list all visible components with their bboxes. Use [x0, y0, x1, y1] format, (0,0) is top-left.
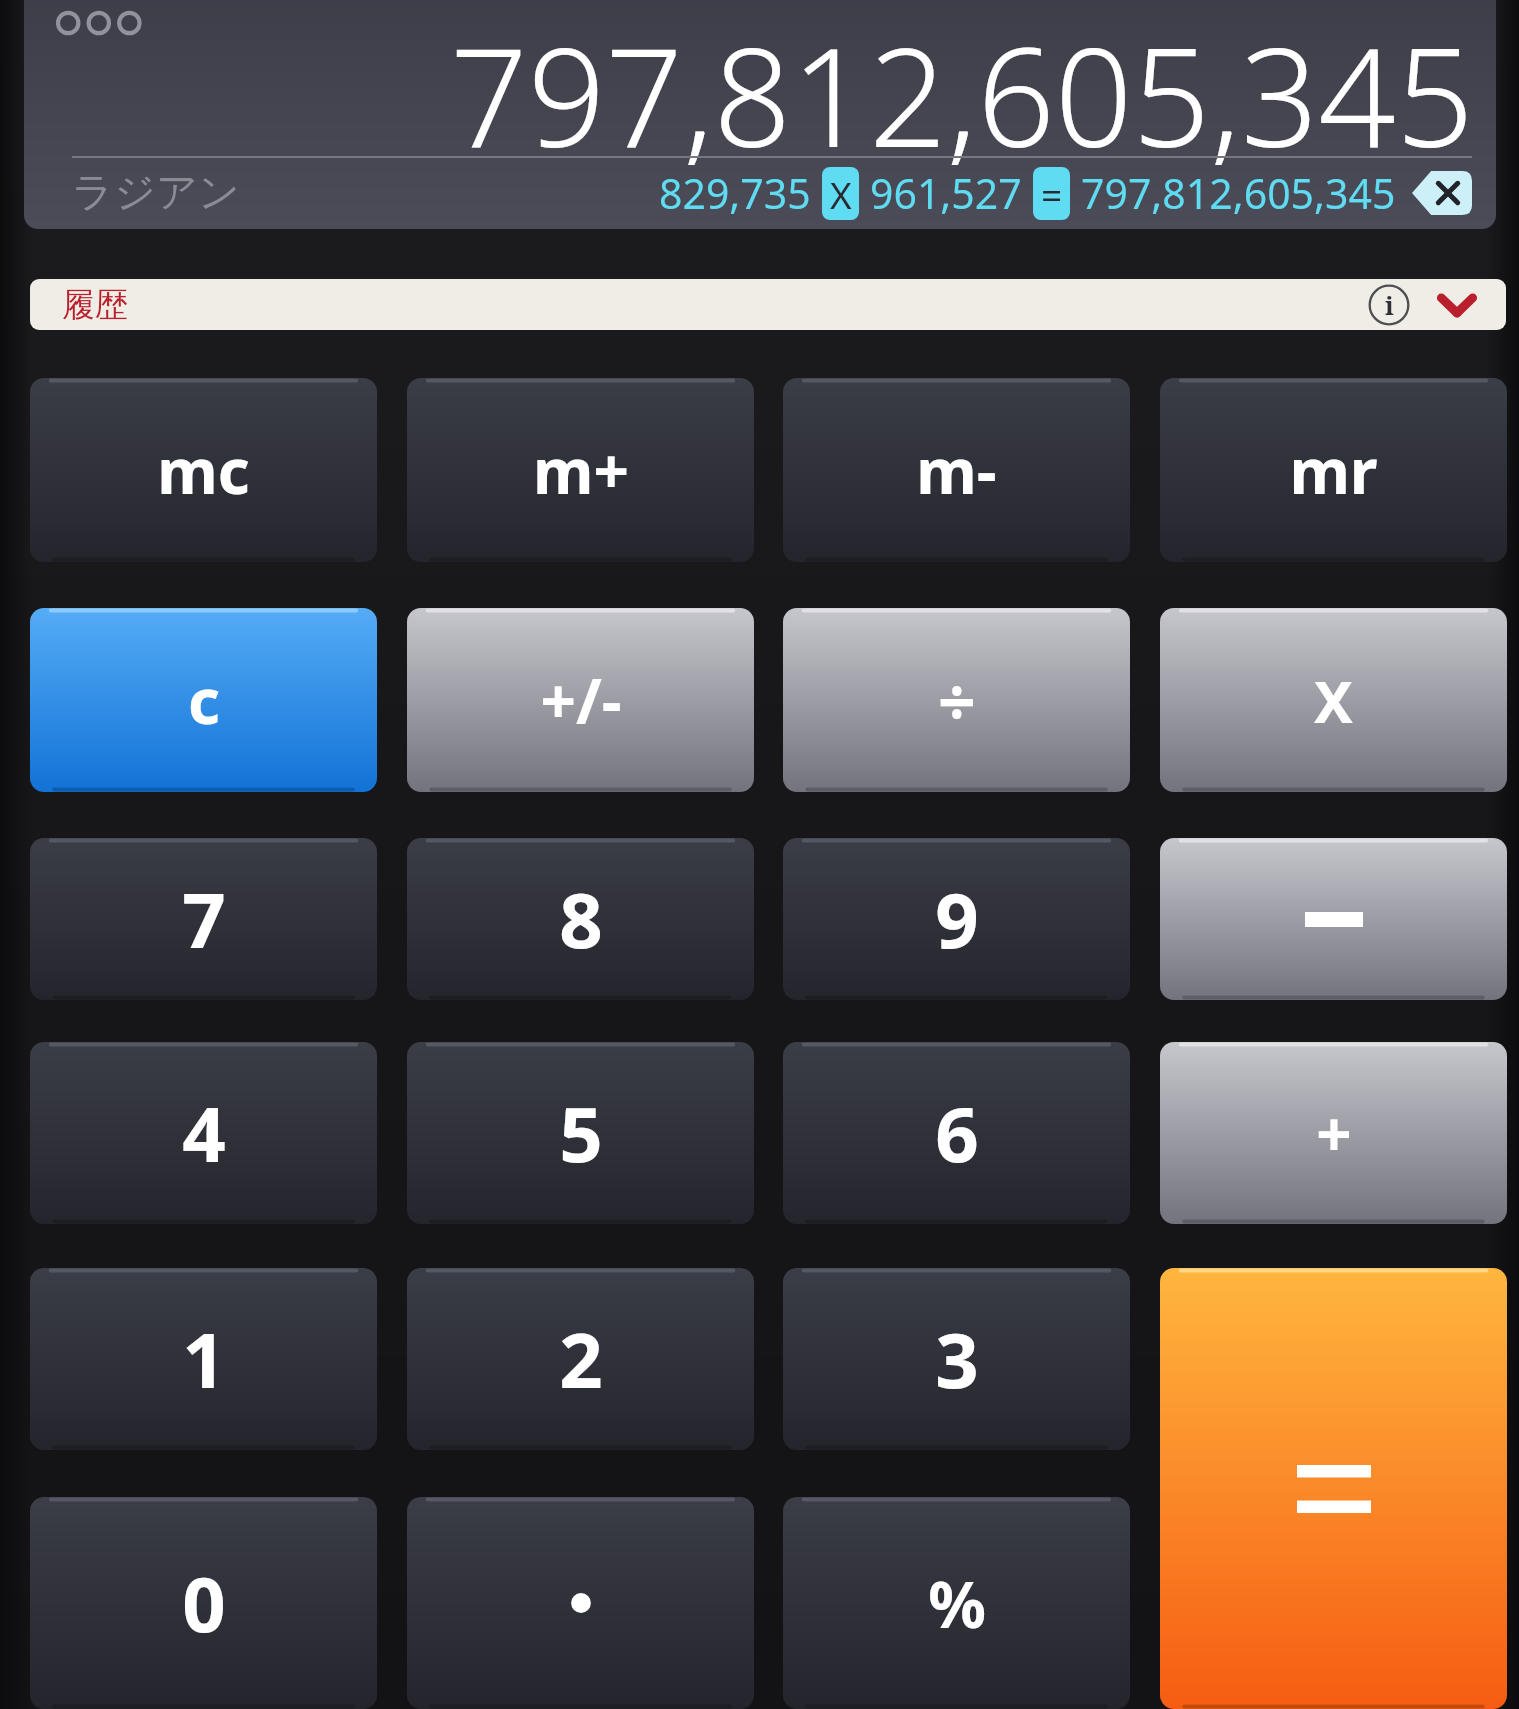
button[interactable]: 2 — [407, 1268, 754, 1450]
staticText: mc — [157, 428, 250, 512]
staticText: 829,735 — [659, 165, 811, 221]
staticText: mr — [1289, 428, 1378, 512]
staticText: m- — [916, 428, 997, 512]
button[interactable]: 6 — [783, 1042, 1130, 1224]
staticText: X — [1314, 661, 1353, 740]
staticText: 797,812,605,345 — [450, 2, 1474, 187]
staticText: + — [1316, 1091, 1352, 1175]
button[interactable]: 7 — [30, 838, 377, 1000]
staticText: 1 — [182, 1307, 226, 1411]
button[interactable]: m- — [783, 378, 1130, 562]
button[interactable]: 履歴 — [30, 279, 1506, 330]
button[interactable]: X — [1160, 608, 1507, 792]
button[interactable] — [1160, 1268, 1507, 1709]
button[interactable]: 0 — [30, 1497, 377, 1709]
button[interactable] — [407, 1497, 754, 1709]
staticText: X — [830, 169, 852, 219]
button[interactable]: m+ — [407, 378, 754, 562]
staticText: c — [188, 658, 220, 742]
staticText: = — [1041, 169, 1063, 219]
staticText: 3 — [935, 1307, 979, 1411]
button[interactable]: mc — [30, 378, 377, 562]
staticText: 8 — [559, 867, 603, 971]
button[interactable]: % — [783, 1497, 1130, 1709]
staticText: 797,812,605,345 — [1081, 165, 1396, 221]
staticText: 4 — [182, 1081, 226, 1185]
staticText: 6 — [935, 1081, 979, 1185]
button[interactable]: 1 — [30, 1268, 377, 1450]
button[interactable]: 3 — [783, 1268, 1130, 1450]
button[interactable]: Info — [1368, 284, 1410, 326]
button[interactable]: mr — [1160, 378, 1507, 562]
button[interactable]: +/- — [407, 608, 754, 792]
button[interactable]: c — [30, 608, 377, 792]
staticText: i — [1385, 288, 1394, 322]
staticText: 5 — [559, 1081, 603, 1185]
button[interactable]: + — [1160, 1042, 1507, 1224]
staticText: 961,527 — [870, 165, 1022, 221]
staticText: +/- — [540, 658, 622, 742]
staticText: 0 — [182, 1551, 226, 1655]
staticText: 7 — [182, 867, 226, 971]
staticText: ラジアン — [72, 167, 240, 219]
staticText: ÷ — [938, 655, 976, 745]
button[interactable] — [1160, 838, 1507, 1000]
button[interactable]: 8 — [407, 838, 754, 1000]
staticText: m+ — [533, 428, 629, 512]
staticText: 9 — [935, 867, 979, 971]
button[interactable]: Backspace — [1412, 171, 1472, 215]
staticText: 2 — [559, 1307, 603, 1411]
staticText: 履歴 — [62, 284, 128, 326]
staticText: % — [928, 1560, 986, 1647]
button[interactable]: Expand history — [1434, 284, 1480, 326]
button[interactable]: ÷ — [783, 608, 1130, 792]
button[interactable]: 5 — [407, 1042, 754, 1224]
button[interactable]: 4 — [30, 1042, 377, 1224]
button[interactable]: 9 — [783, 838, 1130, 1000]
